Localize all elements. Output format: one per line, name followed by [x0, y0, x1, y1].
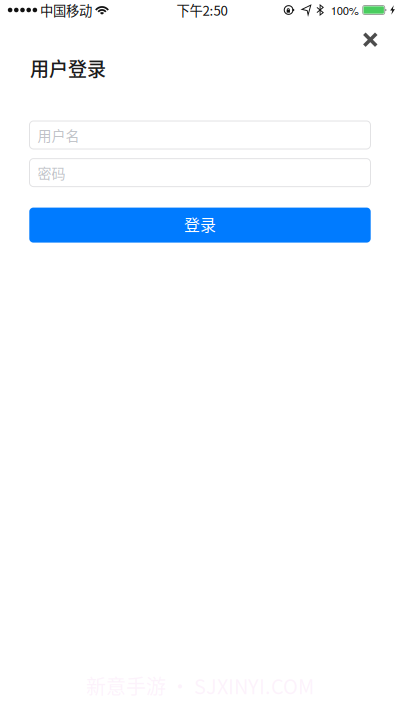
- button[interactable]: 登录: [29, 208, 371, 243]
- staticText: 登录: [184, 212, 216, 236]
- staticText: 用户名: [37, 125, 79, 145]
- staticText: 密码: [37, 162, 65, 183]
- staticText: 下午2:50: [176, 0, 227, 20]
- staticText: 中国移动: [40, 0, 92, 20]
- button[interactable]: Close: [354, 23, 386, 56]
- staticText: 100%: [331, 2, 359, 18]
- staticText: 用户登录: [30, 54, 106, 82]
- staticText: 新意手游 · SJXINYI.COM: [86, 671, 314, 700]
